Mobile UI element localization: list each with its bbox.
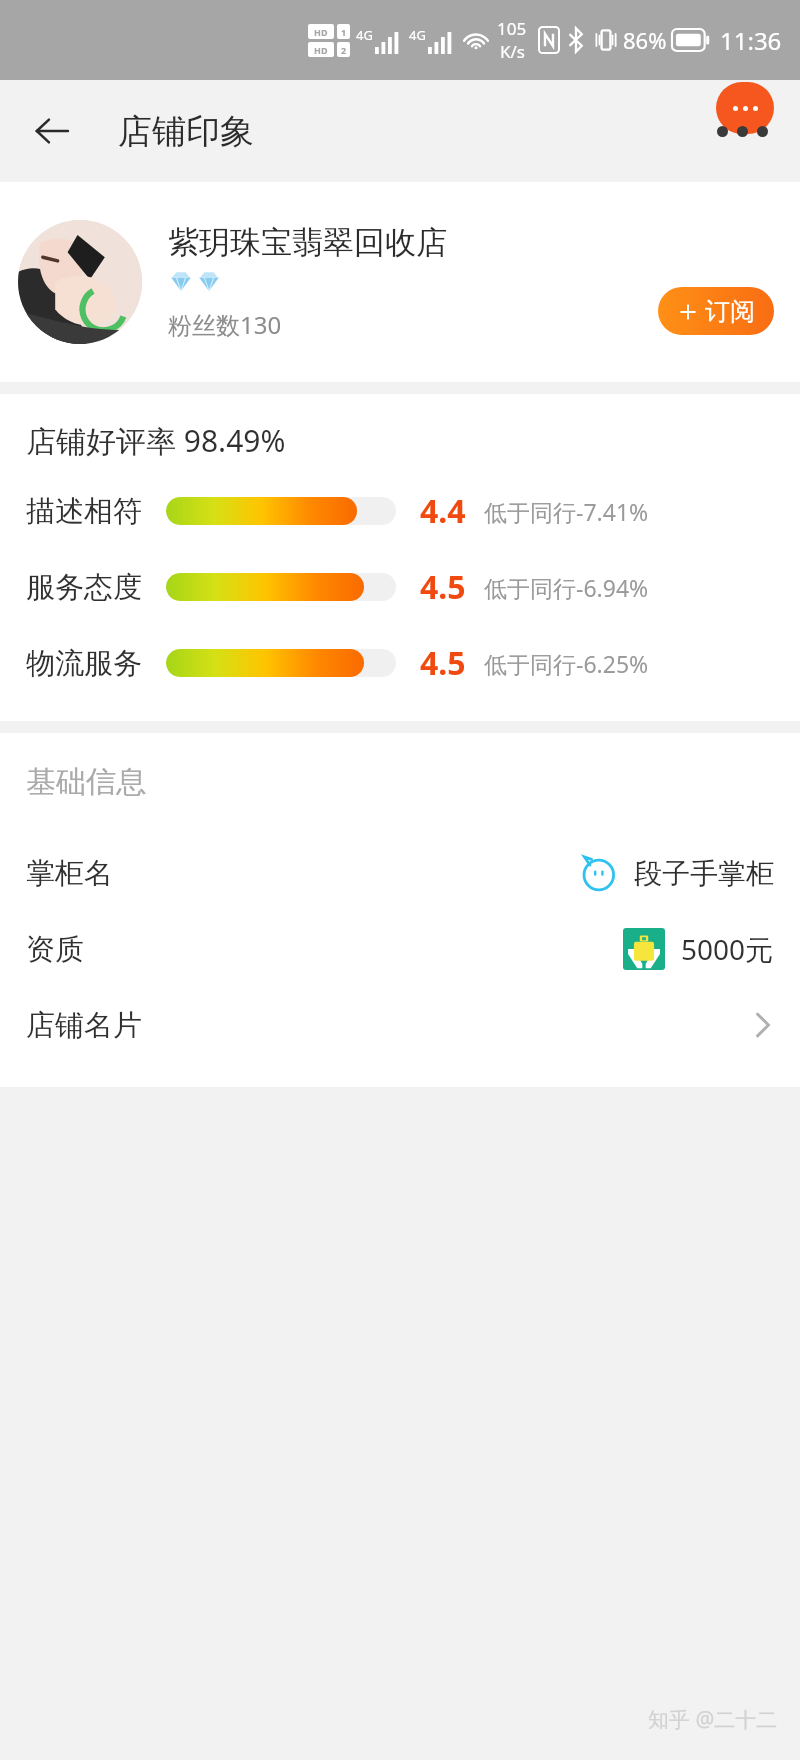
- staticText: HD: [314, 26, 328, 38]
- staticText: 105: [497, 17, 527, 40]
- staticText: 86%: [623, 25, 667, 55]
- staticText: 店铺名片: [26, 1007, 142, 1044]
- staticText: 掌柜名: [26, 855, 113, 892]
- staticText: 服务态度: [26, 569, 142, 606]
- button[interactable]: 资质: [0, 911, 800, 987]
- staticText: K/s: [500, 40, 525, 63]
- staticText: 4G: [409, 26, 426, 44]
- staticText: 1: [341, 26, 347, 38]
- staticText: 11:36: [720, 24, 782, 57]
- staticText: 4.4: [420, 489, 476, 533]
- button[interactable]: 紫玥珠宝翡翠回收店: [0, 182, 800, 382]
- staticText: 4.5: [420, 565, 476, 609]
- button[interactable]: 店铺名片: [0, 987, 800, 1063]
- staticText: 紫玥珠宝翡翠回收店: [168, 223, 447, 262]
- staticText: 段子手掌柜: [634, 856, 774, 891]
- staticText: 店铺好评率 98.49%: [26, 420, 286, 461]
- staticText: 物流服务: [26, 645, 142, 682]
- button[interactable]: Back: [22, 101, 82, 161]
- staticText: 基础信息: [26, 763, 146, 801]
- staticText: 4.5: [420, 641, 476, 685]
- button[interactable]: More options: [709, 108, 776, 155]
- staticText: 低于同行-7.41%: [484, 496, 649, 527]
- staticText: 2: [341, 44, 347, 56]
- staticText: 粉丝数130: [168, 308, 282, 341]
- staticText: 资质: [26, 931, 84, 968]
- button[interactable]: 订阅: [658, 287, 774, 335]
- button[interactable]: 掌柜名: [0, 835, 800, 911]
- staticText: 4G: [356, 26, 373, 44]
- staticText: 描述相符: [26, 493, 142, 530]
- staticText: 店铺印象: [118, 110, 254, 153]
- staticText: HD: [314, 44, 328, 56]
- staticText: 低于同行-6.94%: [484, 572, 649, 603]
- staticText: 5000元: [681, 930, 774, 968]
- staticText: 知乎 @二十二: [648, 1705, 778, 1734]
- staticText: 订阅: [705, 296, 755, 327]
- staticText: 低于同行-6.25%: [484, 648, 649, 679]
